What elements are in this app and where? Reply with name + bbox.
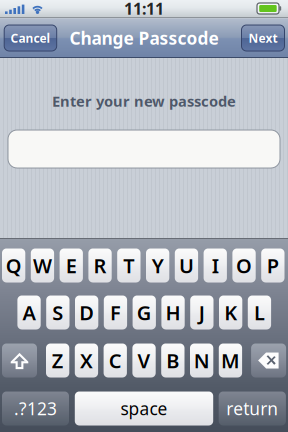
staticText: G bbox=[137, 299, 152, 326]
button[interactable]: Q bbox=[2, 248, 25, 282]
button[interactable]: L bbox=[248, 295, 271, 329]
button[interactable]: Cancel bbox=[4, 25, 57, 51]
staticText: B bbox=[166, 347, 179, 374]
button[interactable]: E bbox=[60, 248, 83, 282]
button[interactable]: Y bbox=[146, 248, 169, 282]
button[interactable]: return bbox=[219, 391, 286, 425]
staticText: .?123 bbox=[14, 397, 57, 420]
button[interactable]: X bbox=[75, 343, 98, 377]
button[interactable]: Z bbox=[46, 343, 69, 377]
staticText: 11:11 bbox=[124, 0, 164, 19]
button[interactable]: K bbox=[219, 295, 242, 329]
staticText: J bbox=[199, 299, 205, 326]
staticText: S bbox=[52, 299, 63, 326]
staticText: A bbox=[22, 299, 35, 326]
button[interactable]: H bbox=[161, 295, 185, 329]
staticText: D bbox=[79, 299, 94, 326]
staticText: space bbox=[120, 397, 167, 420]
staticText: L bbox=[254, 299, 265, 326]
button[interactable]: S bbox=[46, 295, 69, 329]
button[interactable]: G bbox=[133, 295, 156, 329]
button[interactable]: W bbox=[31, 248, 54, 282]
staticText: T bbox=[123, 252, 134, 279]
staticText: W bbox=[33, 252, 52, 279]
staticText: V bbox=[138, 347, 151, 374]
staticText: Q bbox=[6, 252, 22, 279]
button[interactable]: A bbox=[17, 295, 41, 329]
button[interactable]: J bbox=[190, 295, 213, 329]
button[interactable]: space bbox=[75, 391, 213, 425]
button[interactable]: M bbox=[219, 343, 242, 377]
staticText: I bbox=[212, 252, 219, 279]
staticText: Change Passcode bbox=[69, 26, 218, 49]
staticText: E bbox=[66, 252, 77, 279]
staticText: X bbox=[80, 347, 93, 374]
button[interactable]: T bbox=[117, 248, 140, 282]
button[interactable]: N bbox=[190, 343, 213, 377]
button[interactable]: Shift bbox=[2, 343, 37, 377]
staticText: Cancel bbox=[10, 30, 50, 46]
staticText: F bbox=[110, 299, 121, 326]
staticText: U bbox=[179, 252, 194, 279]
staticText: O bbox=[236, 252, 252, 279]
staticText: K bbox=[224, 299, 237, 326]
staticText: return bbox=[226, 397, 278, 420]
button[interactable]: P bbox=[261, 248, 284, 282]
staticText: C bbox=[109, 347, 122, 374]
staticText: Next bbox=[248, 30, 277, 46]
staticText: Z bbox=[52, 347, 64, 374]
button[interactable]: C bbox=[104, 343, 127, 377]
button[interactable]: I bbox=[204, 248, 227, 282]
button[interactable]: U bbox=[175, 248, 198, 282]
staticText: N bbox=[194, 347, 210, 374]
button[interactable]: F bbox=[104, 295, 127, 329]
staticText: H bbox=[166, 299, 181, 326]
button[interactable]: O bbox=[232, 248, 256, 282]
button[interactable]: B bbox=[161, 343, 184, 377]
staticText: R bbox=[94, 252, 107, 279]
staticText: M bbox=[221, 347, 240, 374]
button[interactable]: Delete bbox=[251, 343, 286, 377]
button[interactable]: R bbox=[88, 248, 112, 282]
button[interactable]: D bbox=[75, 295, 98, 329]
button[interactable]: Next bbox=[241, 25, 284, 51]
staticText: P bbox=[267, 252, 279, 279]
button[interactable]: .?123 bbox=[2, 391, 69, 425]
button[interactable]: V bbox=[132, 343, 156, 377]
staticText: Enter your new passcode bbox=[52, 91, 236, 111]
staticText: Y bbox=[152, 252, 164, 279]
